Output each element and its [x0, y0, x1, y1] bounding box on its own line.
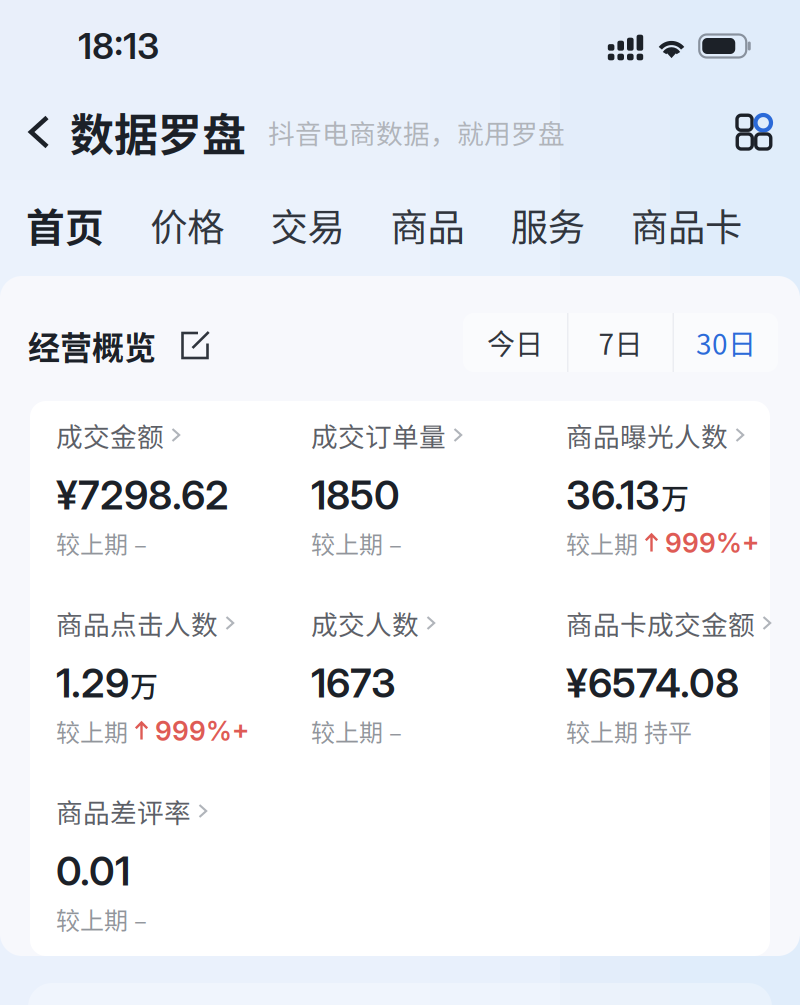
button[interactable]: Back [28, 97, 70, 167]
button[interactable]: 商品卡成交金额 [566, 589, 800, 777]
staticText: 较上期 [566, 526, 638, 560]
staticText: 万 [661, 477, 689, 518]
staticText: 999%+ [155, 715, 250, 747]
staticText: 服务 [511, 198, 585, 252]
staticText: 持平 [644, 714, 692, 748]
staticText: 成交订单量 [311, 416, 446, 454]
staticText: 抖音电商数据，就用罗盘 [268, 113, 565, 151]
staticText: 数据罗盘 [70, 100, 246, 164]
button[interactable]: 7日 [568, 313, 672, 372]
staticText: 商品点击人数 [56, 604, 218, 642]
staticText: – [389, 714, 402, 748]
staticText: 999%+ [665, 527, 760, 559]
staticText: 1850 [311, 471, 400, 519]
button[interactable]: 服务 [511, 198, 585, 252]
button[interactable]: 30日 [674, 313, 778, 372]
staticText: 价格 [150, 198, 224, 252]
staticText: 万 [130, 665, 158, 706]
button[interactable]: 成交订单量 [311, 401, 566, 589]
staticText: ¥7298.62 [56, 471, 229, 519]
staticText: 商品曝光人数 [566, 416, 728, 454]
staticText: 商品卡成交金额 [566, 604, 755, 642]
staticText: 经营概览 [28, 322, 156, 369]
staticText: 较上期 [311, 526, 383, 560]
staticText: 商品差评率 [56, 792, 191, 830]
button[interactable]: Edit [178, 323, 212, 367]
staticText: 成交金额 [56, 416, 164, 454]
button[interactable]: 商品差评率 [56, 777, 311, 965]
button[interactable]: 成交人数 [311, 589, 566, 777]
button[interactable]: 交易 [270, 198, 344, 252]
button[interactable]: 价格 [150, 198, 224, 252]
staticText: – [134, 526, 147, 560]
staticText: 7日 [598, 322, 642, 363]
button[interactable]: 成交金额 [56, 401, 311, 589]
staticText: 较上期 [56, 526, 128, 560]
staticText: 首页 [26, 197, 104, 253]
button[interactable]: 商品曝光人数 [566, 401, 800, 589]
staticText: 较上期 [566, 714, 638, 748]
staticText: 商品 [391, 198, 465, 252]
staticText: 成交人数 [311, 604, 419, 642]
staticText: – [389, 526, 402, 560]
staticText: 较上期 [56, 714, 128, 748]
button[interactable]: 今日 [463, 313, 567, 372]
staticText: 较上期 [56, 902, 128, 936]
staticText: 今日 [487, 322, 543, 363]
staticText: 商品卡 [631, 198, 742, 252]
button[interactable]: 商品卡 [631, 198, 742, 252]
staticText: 1.29 [56, 659, 129, 707]
staticText: 36.13 [566, 471, 660, 519]
button[interactable]: 商品 [391, 198, 465, 252]
staticText: 18:13 [78, 24, 159, 68]
staticText: 较上期 [311, 714, 383, 748]
staticText: 0.01 [56, 847, 130, 895]
staticText: ¥6574.08 [566, 659, 739, 707]
button[interactable]: Apps [725, 97, 783, 167]
button[interactable]: 首页 [26, 198, 104, 252]
button[interactable]: 商品点击人数 [56, 589, 311, 777]
staticText: 交易 [270, 198, 344, 252]
staticText: – [134, 902, 147, 936]
staticText: 1673 [311, 659, 396, 707]
staticText: 30日 [696, 322, 756, 363]
